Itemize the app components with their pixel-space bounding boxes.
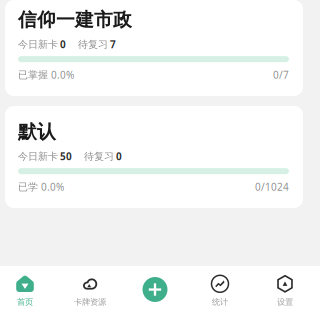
staticText: 已学	[18, 181, 38, 193]
staticText: 0.0%	[51, 68, 74, 82]
staticText: 0	[60, 37, 66, 51]
button[interactable]: 默认	[5, 106, 303, 208]
button[interactable]: 卡牌资源	[57, 266, 122, 312]
staticText: 0.0%	[41, 180, 64, 194]
staticText: 0/1024	[255, 180, 289, 194]
staticText: 首页	[17, 297, 33, 307]
staticText: 50	[60, 149, 72, 163]
staticText: 统计	[212, 297, 228, 307]
staticText: 已掌握	[18, 69, 48, 81]
staticText: 默认	[18, 120, 56, 143]
button[interactable]: Add	[122, 266, 187, 312]
staticText: 0/7	[273, 68, 289, 82]
staticText: 7	[110, 37, 116, 51]
button[interactable]: 首页	[0, 266, 57, 312]
staticText: 待复习	[78, 38, 108, 51]
staticText: 卡牌资源	[74, 297, 106, 307]
staticText: 0	[116, 149, 122, 163]
staticText: 今日新卡	[18, 38, 58, 51]
button[interactable]: 设置	[252, 266, 317, 312]
button[interactable]: 信仰一建市政	[5, 0, 303, 96]
staticText: 待复习	[84, 150, 114, 163]
staticText: 设置	[277, 297, 293, 307]
button[interactable]: 统计	[187, 266, 252, 312]
staticText: 今日新卡	[18, 150, 58, 163]
staticText: 信仰一建市政	[18, 8, 132, 31]
